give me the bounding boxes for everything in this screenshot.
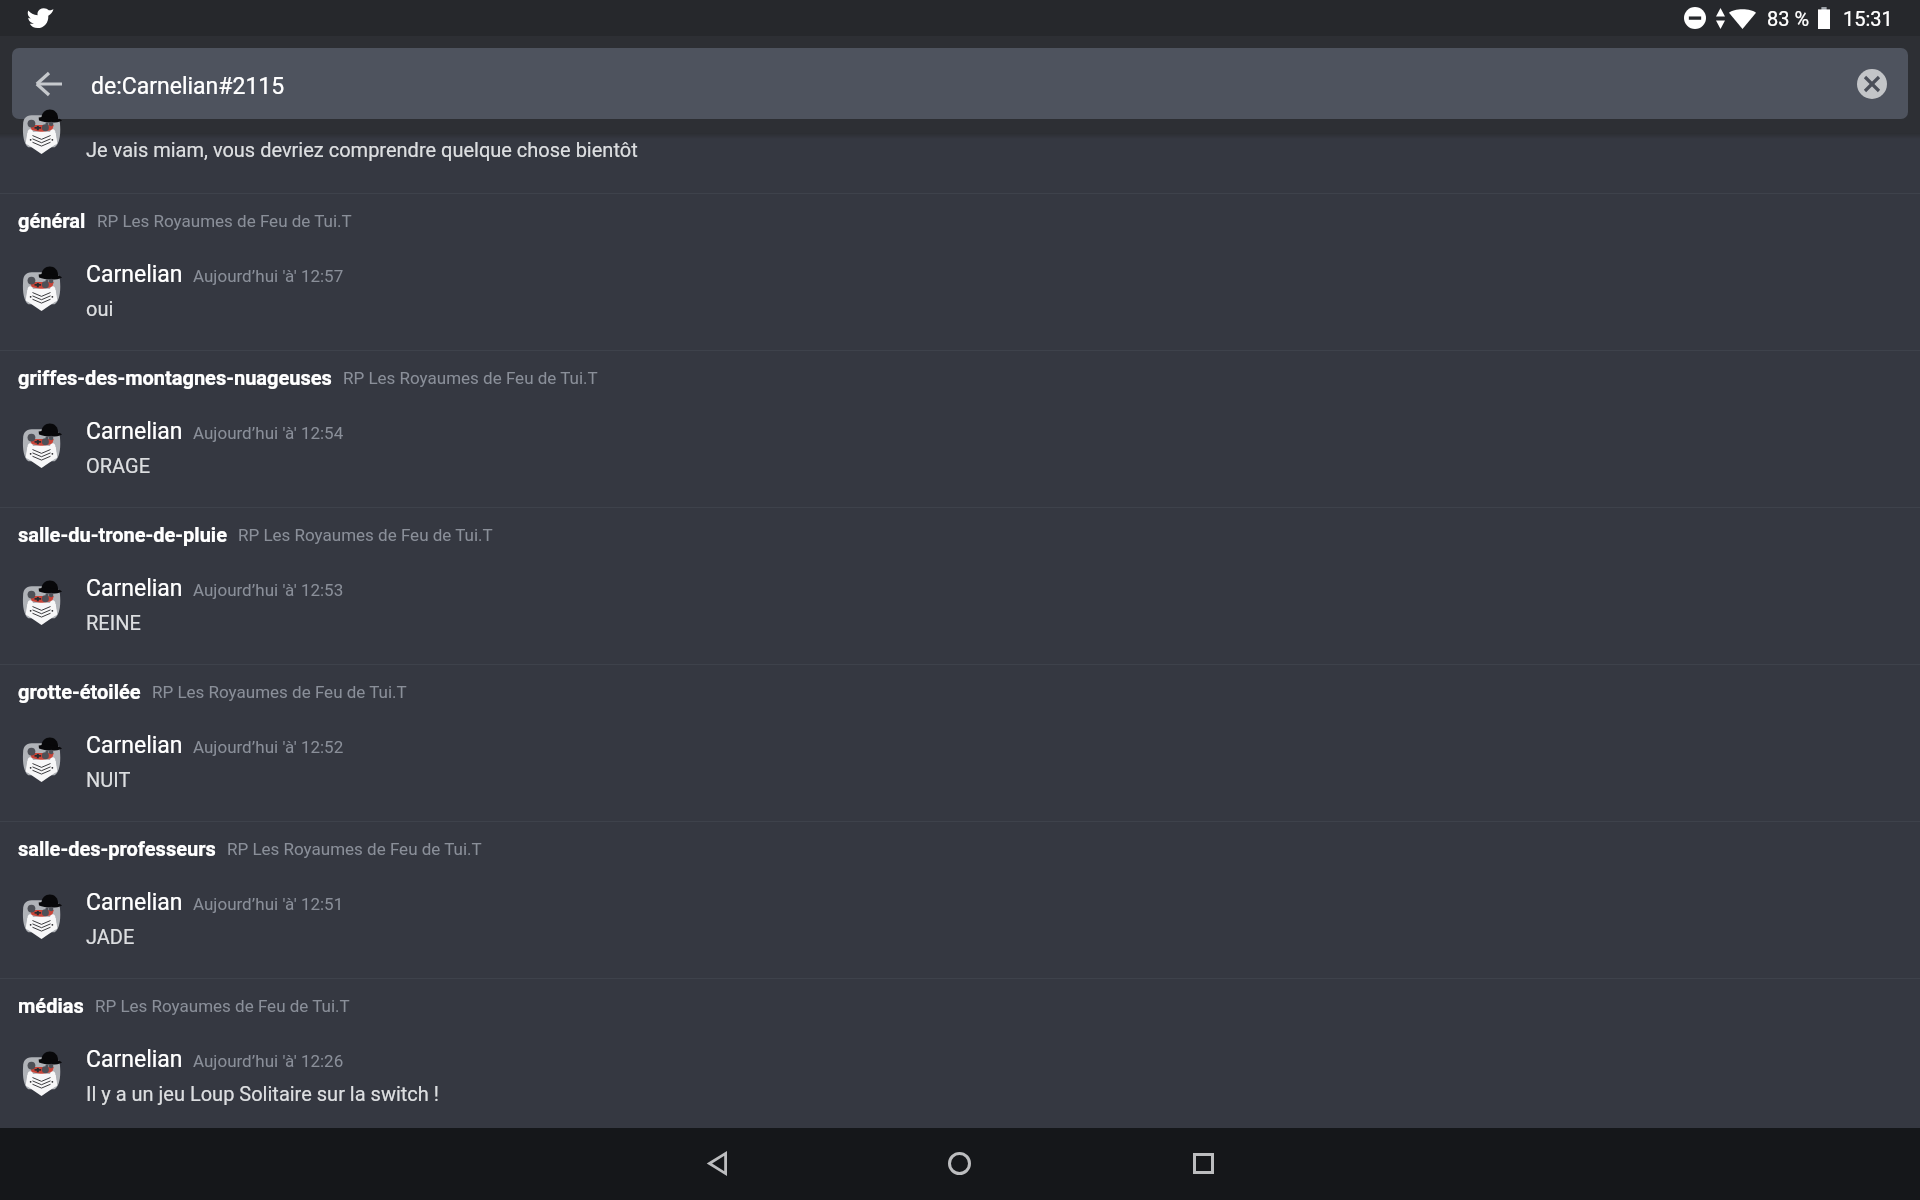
button[interactable]: médias	[0, 979, 1920, 1135]
staticText: salle-des-professeurs	[18, 837, 216, 860]
staticText: RP Les Royaumes de Feu de Tui.T	[97, 211, 352, 231]
button[interactable]: de:Carnelian#2115	[82, 48, 1832, 119]
staticText: RP Les Royaumes de Feu de Tui.T	[238, 525, 493, 545]
staticText: RP Les Royaumes de Feu de Tui.T	[343, 368, 598, 388]
staticText: JADE	[86, 925, 135, 948]
button[interactable]: général	[0, 194, 1920, 350]
staticText: de:Carnelian#2115	[91, 73, 285, 100]
staticText: ORAGE	[86, 454, 151, 477]
button[interactable]: Home	[923, 1138, 995, 1188]
staticText: griffes-des-montagnes-nuageuses	[18, 366, 332, 389]
staticText: Aujourd’hui 'à' 12:57	[193, 266, 344, 286]
button[interactable]: Recent apps	[1167, 1138, 1239, 1188]
staticText: Je vais miam, vous devriez comprendre qu…	[86, 138, 638, 161]
staticText: grotte-étoilée	[18, 680, 141, 703]
staticText: Carnelian	[86, 261, 183, 288]
staticText: Il y a un jeu Loup Solitaire sur la swit…	[86, 1082, 439, 1105]
button[interactable]: Back	[25, 60, 73, 108]
staticText: RP Les Royaumes de Feu de Tui.T	[152, 682, 407, 702]
button[interactable]: griffes-des-montagnes-nuageuses	[0, 351, 1920, 507]
staticText: 83 %	[1767, 7, 1810, 30]
staticText: REINE	[86, 611, 141, 634]
staticText: Carnelian	[86, 1046, 183, 1073]
button[interactable]: salle-du-trone-de-pluie	[0, 508, 1920, 664]
staticText: médias	[18, 994, 84, 1017]
other: Twitter	[28, 6, 54, 29]
staticText: Aujourd’hui 'à' 12:51	[193, 894, 344, 914]
staticText: général	[18, 209, 86, 232]
button[interactable]: Clear search	[1850, 62, 1894, 106]
staticText: Aujourd’hui 'à' 12:54	[193, 423, 344, 443]
staticText: Carnelian	[86, 732, 183, 759]
staticText: Carnelian	[86, 418, 183, 445]
staticText: oui	[86, 297, 114, 320]
staticText: RP Les Royaumes de Feu de Tui.T	[227, 839, 482, 859]
staticText: 15:31	[1843, 7, 1893, 30]
staticText: Carnelian	[86, 575, 183, 602]
staticText: salle-du-trone-de-pluie	[18, 523, 227, 546]
button[interactable]: salle-des-professeurs	[0, 822, 1920, 978]
staticText: RP Les Royaumes de Feu de Tui.T	[95, 996, 350, 1016]
staticText: NUIT	[86, 768, 131, 791]
staticText: Aujourd’hui 'à' 12:52	[193, 737, 344, 757]
button[interactable]: grotte-étoilée	[0, 665, 1920, 821]
button[interactable]: Back	[681, 1138, 753, 1188]
staticText: Carnelian	[86, 889, 183, 916]
staticText: Aujourd’hui 'à' 12:26	[193, 1051, 344, 1071]
staticText: Aujourd’hui 'à' 12:53	[193, 580, 344, 600]
